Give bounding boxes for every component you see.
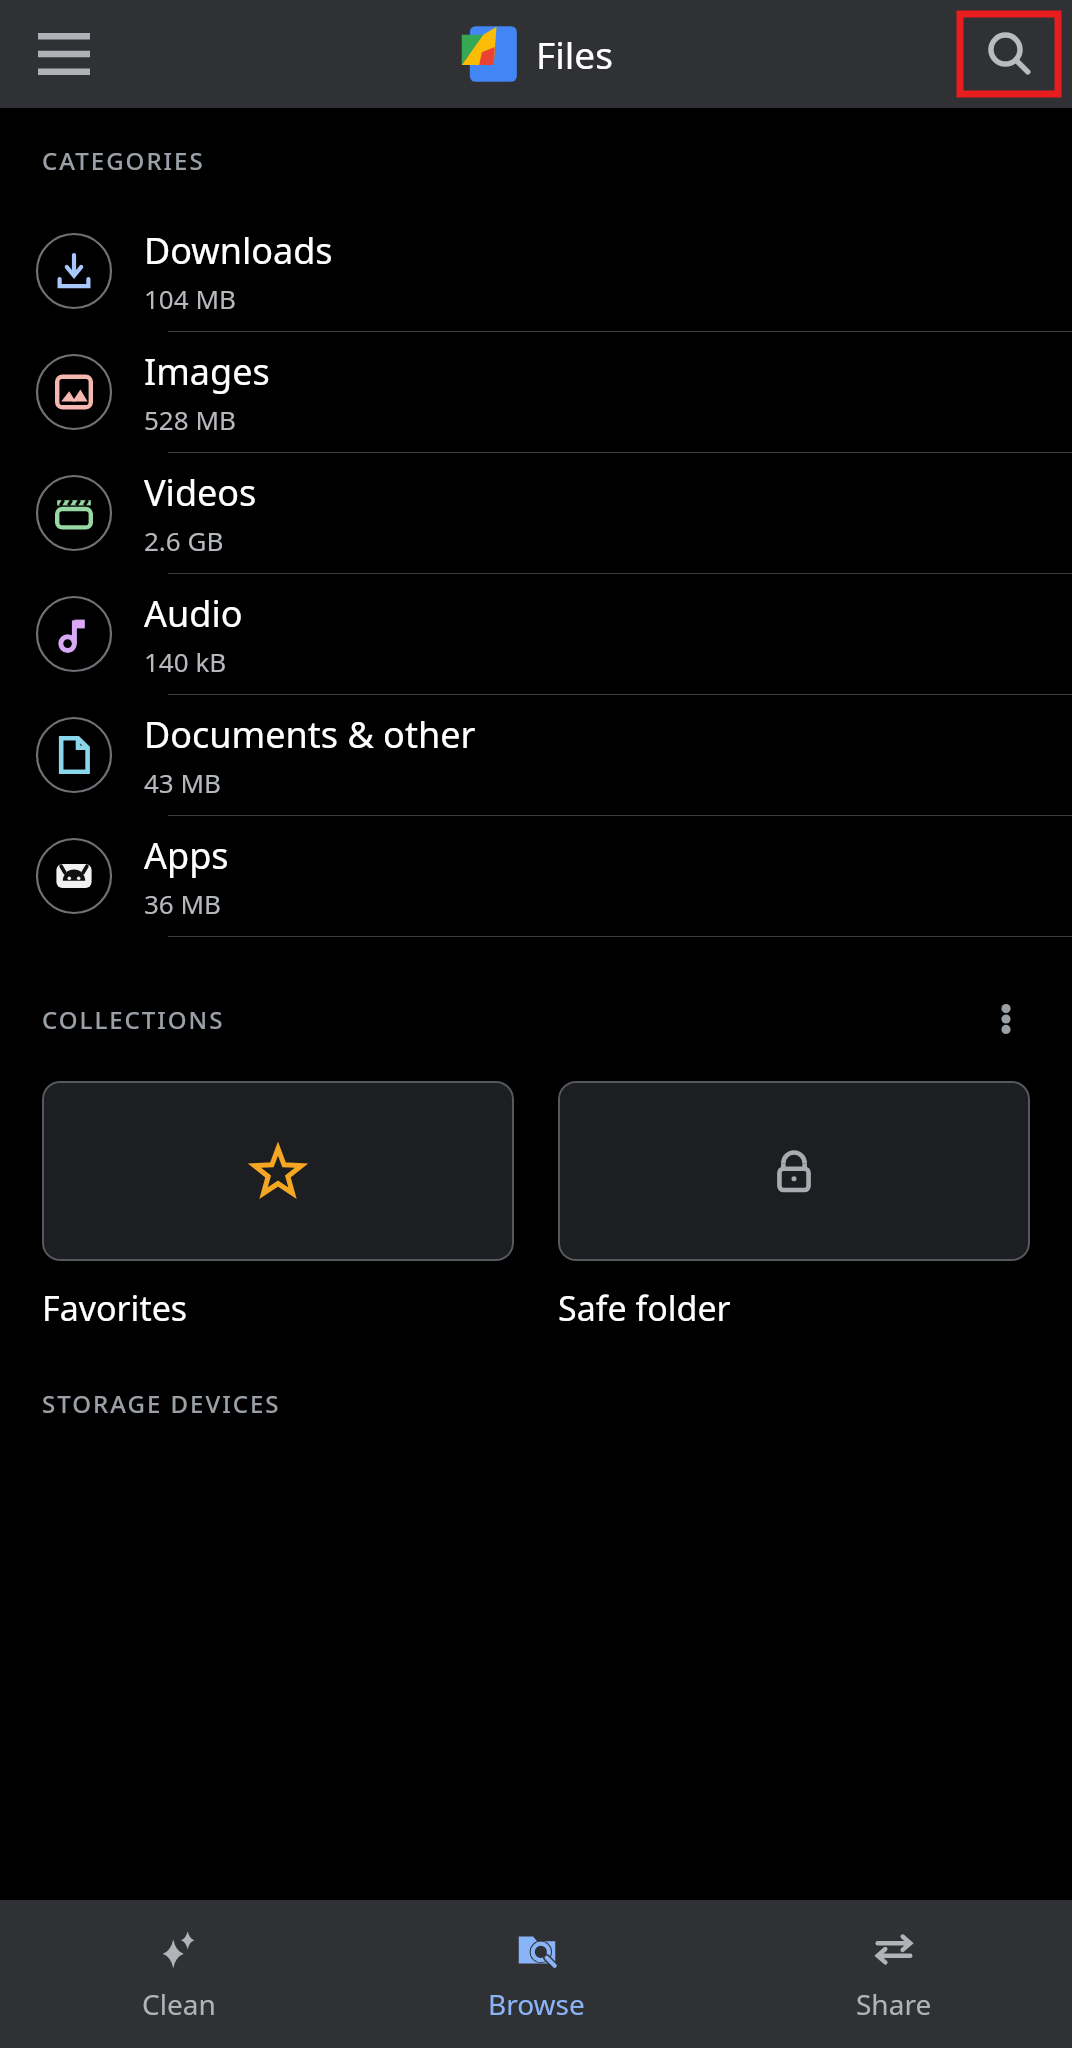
staticText: Audio xyxy=(144,589,243,638)
button[interactable]: Apps xyxy=(0,816,1072,936)
button[interactable] xyxy=(558,1081,1030,1261)
button[interactable]: Search xyxy=(960,14,1058,94)
button[interactable]: Videos xyxy=(0,453,1072,573)
button[interactable]: Share xyxy=(715,1900,1072,2048)
button[interactable]: Documents & other xyxy=(0,695,1072,815)
staticText: 2.6 GB xyxy=(144,523,224,558)
staticText: 528 MB xyxy=(144,402,236,437)
button[interactable] xyxy=(42,1081,514,1261)
staticText: CATEGORIES xyxy=(42,144,205,177)
button[interactable]: More options xyxy=(970,983,1042,1055)
staticText: Apps xyxy=(144,831,229,880)
staticText: Browse xyxy=(488,1985,585,2023)
staticText: Safe folder xyxy=(558,1285,731,1331)
button[interactable]: Images xyxy=(0,332,1072,452)
staticText: Downloads xyxy=(144,226,333,275)
staticText: Images xyxy=(144,347,270,396)
button[interactable]: Open navigation menu xyxy=(22,12,106,96)
staticText: Favorites xyxy=(42,1285,188,1331)
button[interactable]: Downloads xyxy=(0,211,1072,331)
staticText: Documents & other xyxy=(144,710,476,759)
button[interactable]: Clean xyxy=(0,1900,358,2048)
staticText: STORAGE DEVICES xyxy=(42,1387,281,1420)
staticText: COLLECTIONS xyxy=(42,1003,225,1036)
staticText: Share xyxy=(856,1985,932,2023)
staticText: Videos xyxy=(144,468,257,517)
staticText: 140 kB xyxy=(144,644,227,679)
staticText: Files xyxy=(536,29,613,79)
button[interactable]: Browse xyxy=(358,1900,715,2048)
staticText: 36 MB xyxy=(144,886,221,921)
staticText: Clean xyxy=(142,1985,216,2023)
staticText: 43 MB xyxy=(144,765,221,800)
staticText: 104 MB xyxy=(144,281,236,316)
button[interactable]: Audio xyxy=(0,574,1072,694)
